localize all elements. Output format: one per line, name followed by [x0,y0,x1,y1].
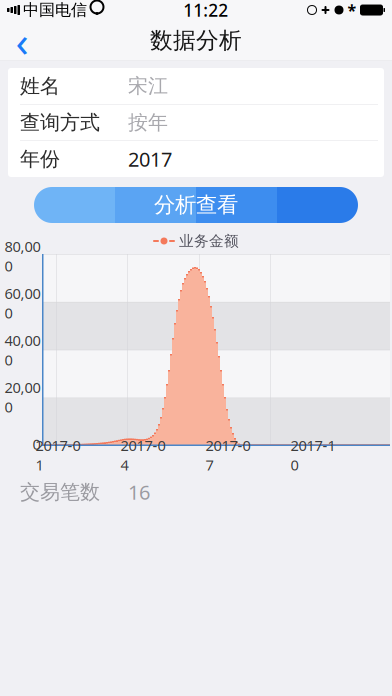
staticText: 16 [128,479,150,505]
staticText: 中国电信 [23,0,87,20]
staticText: 业务金额 [179,232,239,250]
staticText: 20,000 [4,377,40,416]
staticText: 11:22 [183,0,228,21]
button[interactable]: 分析查看 [34,187,358,223]
staticText: 交易笔数 [20,480,100,504]
staticText: ‹ [15,12,28,69]
staticText: * [347,0,356,21]
staticText: 2017-07 [205,435,250,474]
staticText: 查询方式 [20,110,100,135]
staticText: 数据分析 [150,27,242,54]
staticText: 2017 [128,146,172,172]
staticText: 40,000 [4,330,40,369]
staticText: 分析查看 [154,192,238,218]
staticText: 年份 [20,147,60,171]
staticText: 宋江 [128,74,168,98]
staticText: 2017-04 [120,435,165,474]
staticText: 按年 [128,110,168,135]
staticText: 姓名 [20,74,60,98]
staticText: 0 [32,434,40,454]
staticText: 2017-10 [290,435,335,474]
staticText: 60,000 [4,283,40,322]
staticText: 2017-01 [35,435,80,474]
button[interactable]: 返回 [0,20,44,60]
staticText: 80,000 [4,236,40,275]
